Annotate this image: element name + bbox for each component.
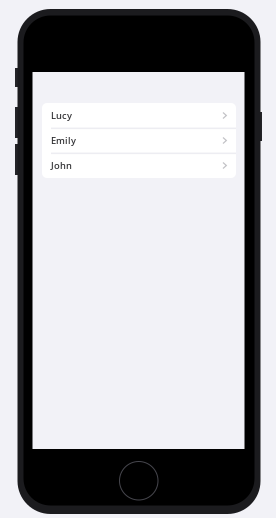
- button[interactable]: Lucy: [42, 103, 236, 128]
- staticText: Lucy: [51, 109, 72, 122]
- staticText: Emily: [51, 134, 76, 147]
- button[interactable]: Emily: [42, 128, 236, 153]
- button[interactable]: John: [42, 153, 236, 178]
- staticText: John: [51, 159, 72, 172]
